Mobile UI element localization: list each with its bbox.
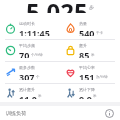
staticText: 热量 — [79, 21, 87, 26]
other: Elevation — [65, 45, 76, 56]
staticText: 540 — [79, 27, 95, 36]
staticText: 最多步数 — [19, 65, 35, 70]
staticText: 平均步频 — [19, 43, 35, 48]
staticText: 米 — [91, 53, 95, 57]
other: Total ascent — [5, 88, 16, 99]
staticText: 5,025 — [26, 0, 88, 13]
other: Calories — [65, 23, 76, 34]
staticText: 151 — [79, 71, 95, 80]
button[interactable]: Total ascent — [0, 84, 60, 102]
button[interactable]: Elevation — [60, 40, 120, 61]
staticText: 9.9 — [79, 93, 92, 99]
staticText: 70 — [19, 49, 30, 58]
other: Duration — [5, 23, 16, 34]
staticText: 累计爬升 — [19, 87, 35, 92]
staticText: 千卡 — [96, 31, 103, 35]
staticText: 米 — [38, 94, 42, 98]
button[interactable]: Total descent — [60, 84, 120, 102]
staticText: 运动时长 — [19, 21, 35, 26]
staticText: 个/分钟 — [31, 52, 43, 57]
other: Total descent — [65, 88, 76, 99]
staticText: 累计下降 — [79, 87, 95, 92]
other: Average heart rate — [65, 67, 76, 78]
staticText: 307 — [19, 71, 35, 80]
button[interactable]: Average heart rate — [60, 62, 120, 83]
staticText: 1:11:45 — [19, 27, 50, 36]
staticText: 85 — [79, 49, 90, 58]
staticText: 爬升 — [79, 43, 87, 48]
button[interactable]: 训练负荷 — [0, 106, 120, 120]
staticText: 步 — [89, 4, 94, 10]
other: Average cadence — [5, 45, 16, 56]
button[interactable]: Max steps — [0, 62, 60, 83]
staticText: 11.0 — [19, 93, 37, 99]
button[interactable]: Average cadence — [0, 40, 60, 61]
button[interactable]: Calories — [60, 18, 120, 39]
other: Info — [105, 109, 114, 118]
other: Max steps — [5, 67, 16, 78]
staticText: 次/分钟 — [96, 74, 108, 79]
staticText: 平均心率 — [79, 65, 95, 70]
staticText: 个 — [36, 75, 40, 79]
staticText: 训练负荷 — [6, 110, 26, 116]
staticText: 米 — [93, 94, 97, 98]
button[interactable]: Duration — [0, 18, 60, 39]
